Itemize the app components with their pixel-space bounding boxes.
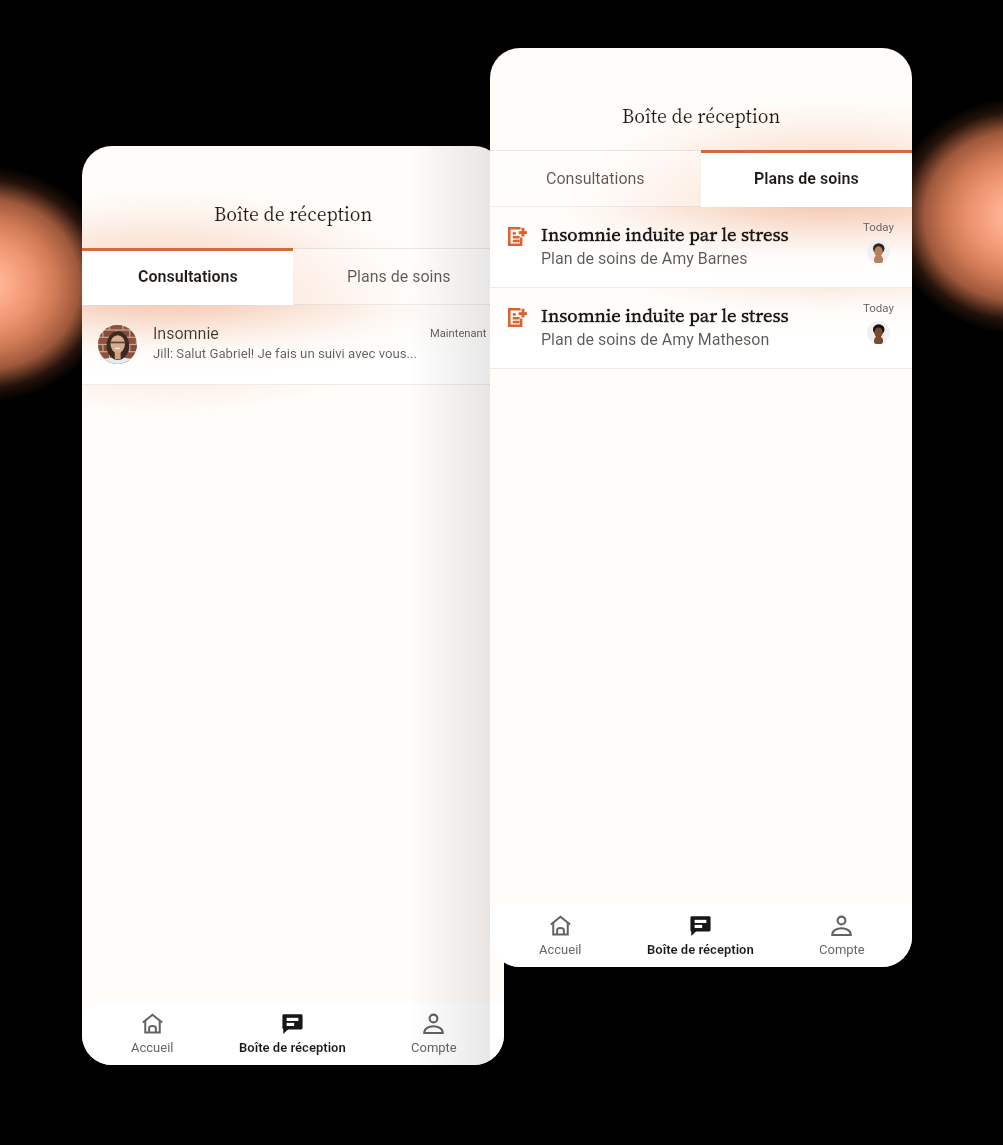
staticText: Plans de soins [754, 169, 859, 188]
staticText: Insomnie induite par le stress [541, 303, 789, 329]
staticText: Today [863, 301, 894, 314]
staticText: Insomnie induite par le stress [541, 222, 789, 248]
button[interactable]: Insomnie induite par le stress [490, 288, 912, 368]
button[interactable]: Insomnie induite par le stress [490, 207, 912, 287]
button[interactable]: Accueil [490, 915, 630, 957]
button[interactable]: Compte [363, 1013, 504, 1055]
staticText: Compte [819, 942, 865, 957]
staticText: Plan de soins de Amy Barnes [541, 249, 748, 268]
button[interactable]: Plans de soins [293, 248, 504, 305]
staticText: Jill: Salut Gabriel! Je fais un suivi av… [153, 346, 417, 361]
staticText: Boîte de réception [622, 103, 781, 130]
staticText: Consultations [138, 267, 238, 286]
staticText: Consultations [546, 169, 645, 188]
staticText: Accueil [131, 1040, 174, 1055]
button[interactable]: Consultations [82, 248, 293, 305]
staticText: Boîte de réception [214, 201, 373, 228]
button[interactable]: Accueil [82, 1013, 222, 1055]
button[interactable]: Insomnie [82, 305, 504, 384]
staticText: Insomnie [153, 324, 219, 343]
staticText: Plan de soins de Amy Matheson [541, 330, 770, 349]
button[interactable]: Consultations [490, 150, 701, 207]
staticText: Boîte de réception [647, 942, 754, 957]
button[interactable]: Boîte de réception [222, 1013, 363, 1055]
staticText: Today [863, 220, 894, 233]
staticText: Accueil [539, 942, 582, 957]
staticText: Boîte de réception [239, 1040, 346, 1055]
button[interactable]: Compte [771, 915, 912, 957]
staticText: Maintenant [430, 327, 487, 340]
staticText: Compte [411, 1040, 457, 1055]
staticText: Plans de soins [347, 267, 451, 286]
button[interactable]: Boîte de réception [630, 915, 771, 957]
button[interactable]: Plans de soins [701, 150, 912, 207]
